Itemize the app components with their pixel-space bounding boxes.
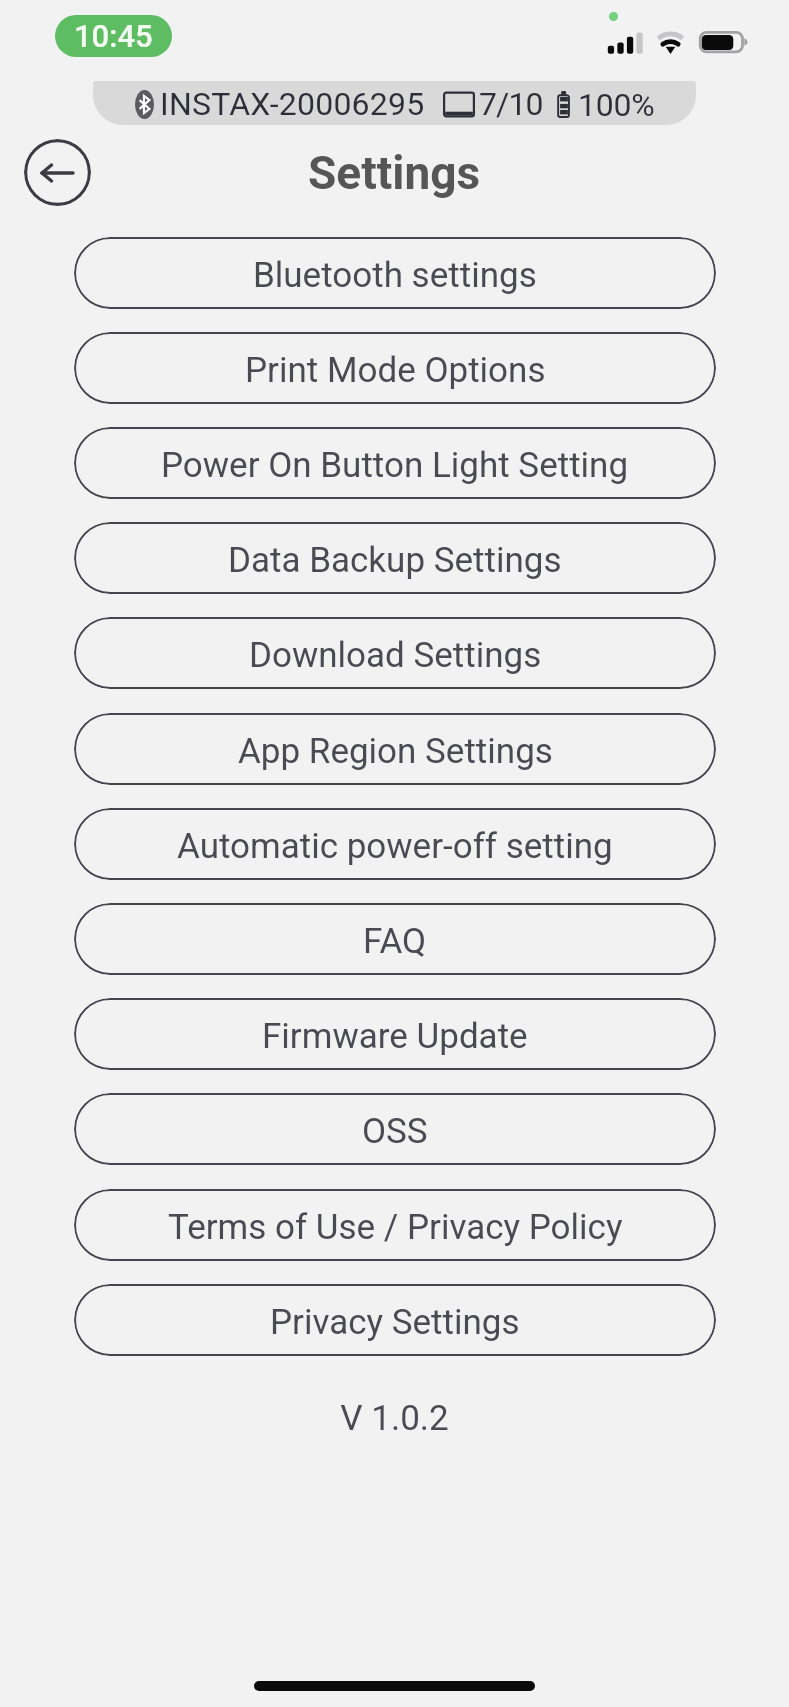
button[interactable]: Back	[24, 139, 91, 206]
staticText: OSS	[362, 1111, 428, 1152]
staticText: Privacy Settings	[270, 1302, 520, 1343]
staticText: INSTAX-20006295	[160, 85, 425, 123]
button[interactable]: FAQ	[74, 903, 716, 975]
button[interactable]: Privacy Settings	[74, 1284, 716, 1356]
button[interactable]: OSS	[74, 1093, 716, 1165]
button[interactable]: Automatic power-off setting	[74, 808, 716, 880]
staticText: Download Settings	[249, 635, 542, 676]
staticText: Firmware Update	[262, 1016, 528, 1057]
staticText: Power On Button Light Setting	[161, 445, 629, 486]
staticText: 7/10	[479, 85, 543, 123]
staticText: Automatic power-off setting	[177, 826, 613, 867]
button[interactable]: Data Backup Settings	[74, 522, 716, 594]
button[interactable]: Print Mode Options	[74, 332, 716, 404]
staticText: Print Mode Options	[245, 350, 546, 391]
staticText: Settings	[308, 146, 481, 200]
button[interactable]: App Region Settings	[74, 713, 716, 785]
staticText: FAQ	[363, 921, 427, 962]
staticText: App Region Settings	[238, 731, 553, 772]
button[interactable]: Firmware Update	[74, 998, 716, 1070]
staticText: Bluetooth settings	[253, 255, 537, 296]
staticText: Terms of Use / Privacy Policy	[168, 1207, 623, 1248]
button[interactable]: Terms of Use / Privacy Policy	[74, 1189, 716, 1261]
staticText: 10:45	[74, 18, 153, 54]
staticText: Data Backup Settings	[228, 540, 562, 581]
staticText: V 1.0.2	[0, 1398, 789, 1439]
button[interactable]: Download Settings	[74, 617, 716, 689]
button[interactable]: Power On Button Light Setting	[74, 427, 716, 499]
staticText: 100%	[578, 86, 655, 124]
button[interactable]: Bluetooth settings	[74, 237, 716, 309]
